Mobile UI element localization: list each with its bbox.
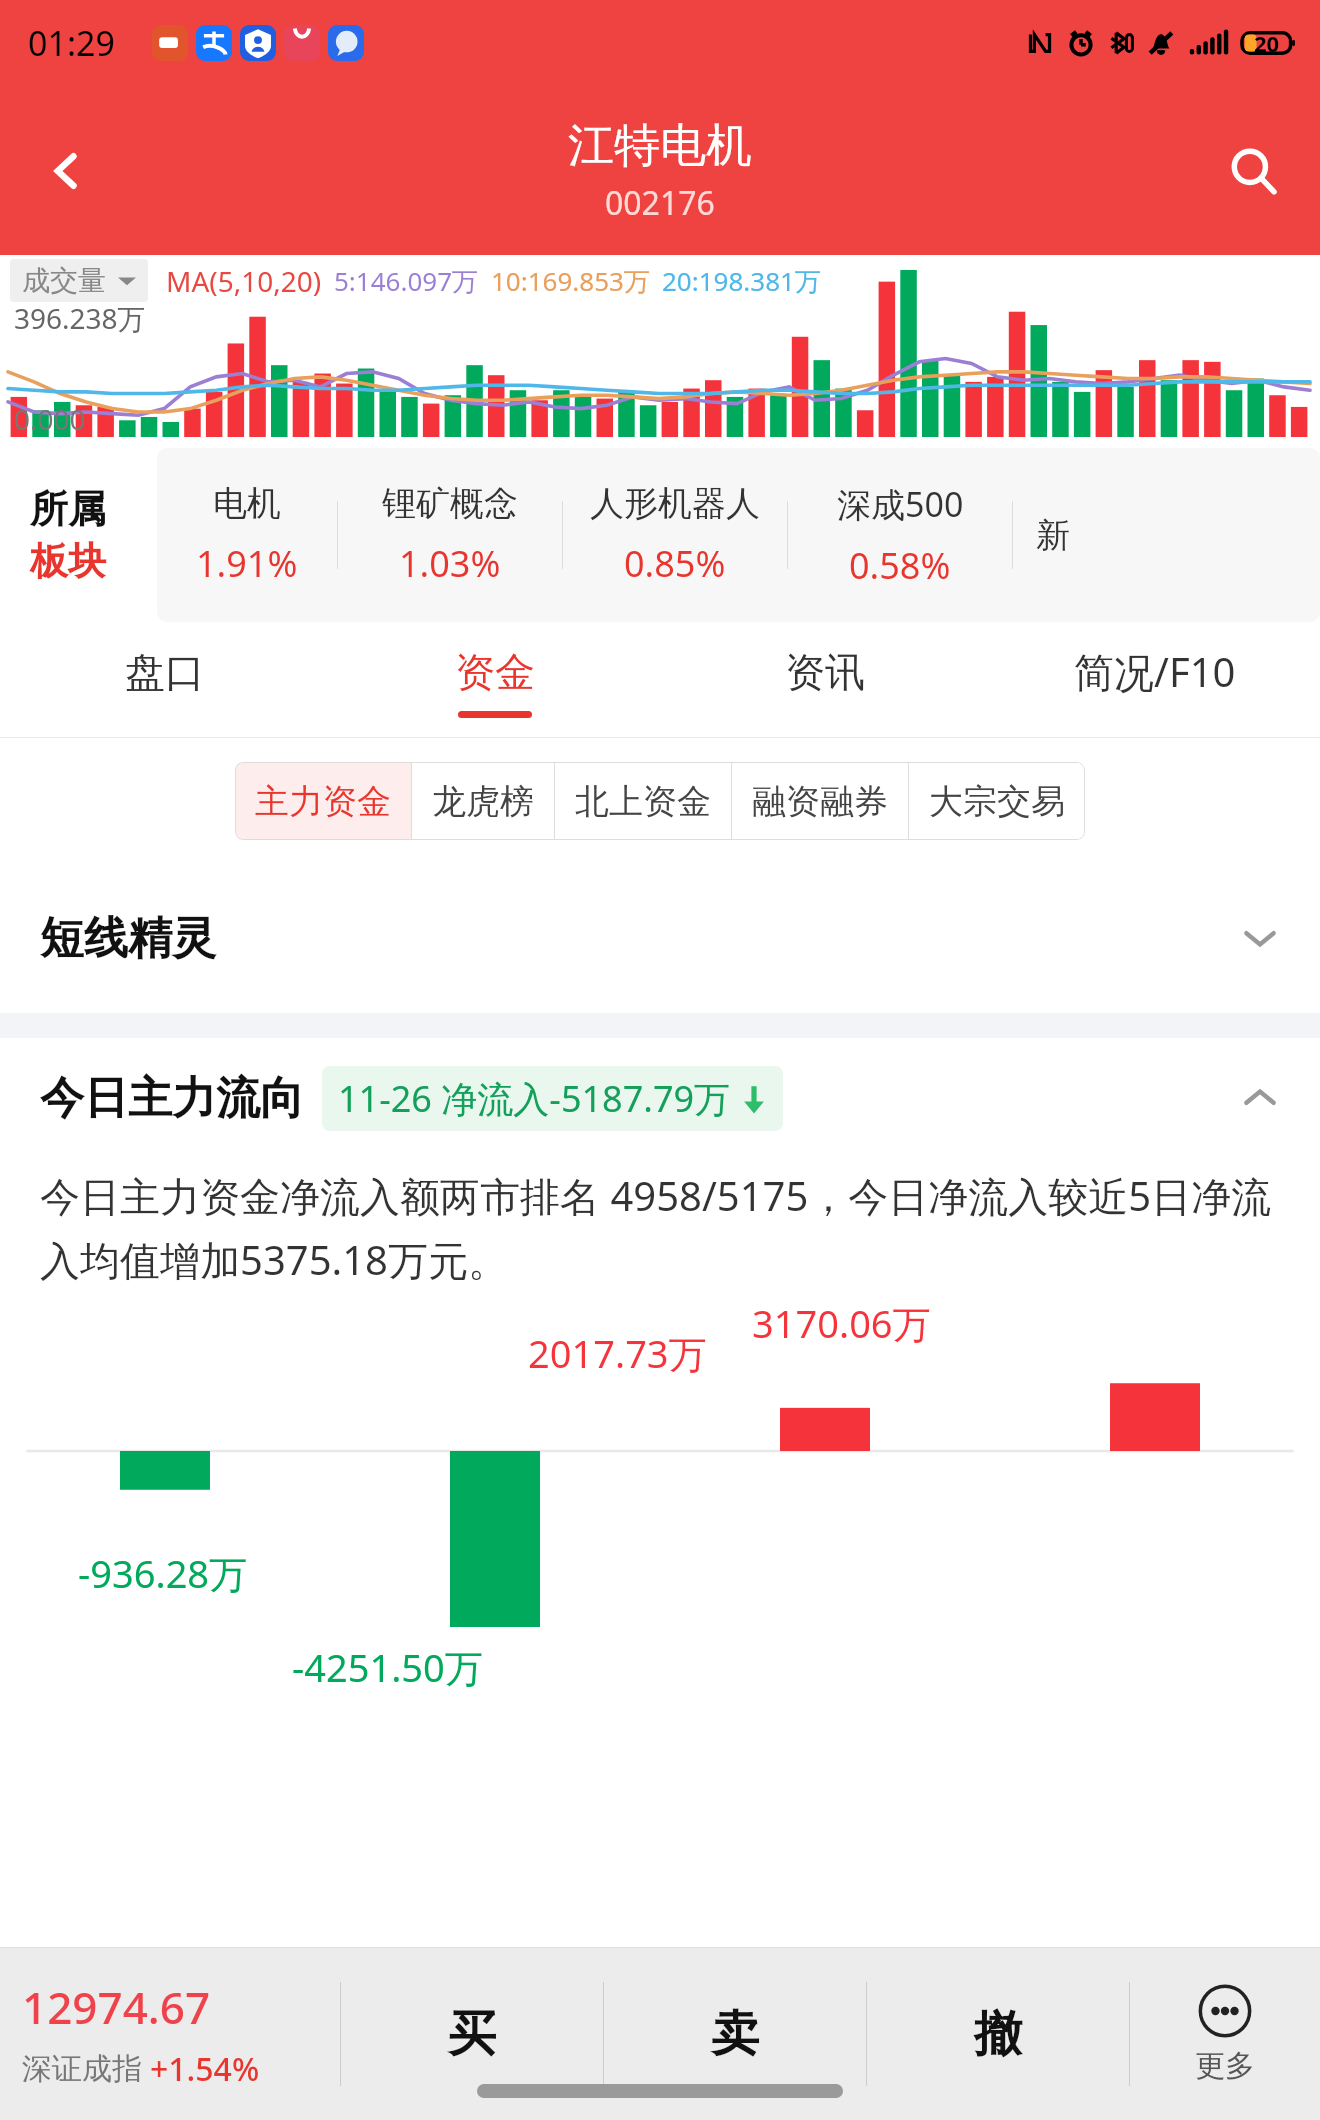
staticText: 12974.67	[22, 1977, 211, 2037]
staticText: 买	[448, 2004, 496, 2064]
staticText: 3170.06万	[752, 1297, 931, 1349]
button[interactable]: 人形机器人	[563, 448, 787, 622]
button[interactable]: 买	[341, 1948, 603, 2120]
staticText: 10:169.853万	[491, 263, 650, 299]
button[interactable]: 盘口	[0, 627, 330, 737]
staticText: 锂矿概念	[382, 482, 518, 525]
button[interactable]: 龙虎榜	[412, 762, 554, 840]
staticText: 主力资金	[255, 780, 391, 823]
staticText: 盘口	[125, 647, 205, 697]
staticText: 资金	[455, 647, 535, 697]
staticText: 1.03%	[399, 539, 501, 588]
staticText: 01:29	[28, 20, 115, 66]
button[interactable]: 锂矿概念	[338, 448, 562, 622]
staticText: 0.85%	[624, 539, 726, 588]
staticText: 卖	[711, 2004, 759, 2064]
staticText: 撤	[974, 2004, 1022, 2064]
staticText: 396.238万	[14, 299, 146, 337]
staticText: 002176	[605, 181, 715, 225]
staticText: 短线精灵	[40, 911, 216, 966]
staticText: 龙虎榜	[432, 780, 534, 823]
staticText: 电机	[213, 482, 281, 525]
staticText: 11-26 净流入-5187.79万	[338, 1074, 731, 1123]
button[interactable]: 简况/F10	[990, 627, 1320, 737]
staticText: 新	[1036, 514, 1070, 557]
other: Expand	[1240, 918, 1280, 958]
button[interactable]: 今日主力流向	[0, 1038, 1320, 1158]
staticText: +1.54%	[150, 2047, 260, 2091]
staticText: 简况/F10	[1074, 644, 1236, 699]
staticText: 板块	[30, 537, 106, 585]
button[interactable]: Search	[1208, 126, 1298, 216]
staticText: MA(5,10,20)	[166, 262, 322, 300]
button[interactable]: Back	[22, 126, 112, 216]
staticText: 20:198.381万	[662, 263, 821, 299]
button[interactable]: 12974.67	[0, 1948, 340, 2120]
staticText: 0.58%	[849, 541, 951, 590]
staticText: 20	[1254, 28, 1280, 58]
staticText: 江特电机	[568, 117, 752, 175]
button[interactable]: 资讯	[660, 627, 990, 737]
staticText: 今日主力资金净流入额两市排名 4958/5175，今日净流入较近5日净流入均值增…	[40, 1168, 1280, 1287]
button[interactable]: 大宗交易	[909, 762, 1085, 840]
staticText: 2017.73万	[528, 1327, 707, 1379]
button[interactable]: 资金	[330, 627, 660, 737]
staticText: -936.28万	[78, 1547, 248, 1599]
button[interactable]: 深成500	[788, 448, 1012, 622]
staticText: 0.000	[14, 400, 86, 438]
staticText: 今日主力流向	[40, 1071, 304, 1126]
staticText: 更多	[1195, 2047, 1255, 2085]
staticText: -4251.50万	[292, 1641, 483, 1693]
staticText: 所属	[30, 485, 106, 533]
staticText: 融资融券	[752, 780, 888, 823]
button[interactable]: 更多	[1130, 1948, 1320, 2120]
staticText: 1.91%	[196, 539, 298, 588]
staticText: 5:146.097万	[334, 263, 479, 299]
button[interactable]: 北上资金	[555, 762, 731, 840]
button[interactable]: 主力资金	[235, 762, 411, 840]
staticText: 大宗交易	[929, 780, 1065, 823]
staticText: 人形机器人	[590, 482, 760, 525]
button[interactable]: 新	[1013, 448, 1093, 622]
button[interactable]: 短线精灵	[0, 863, 1320, 1013]
other: Collapse	[1240, 1078, 1280, 1118]
staticText: 深证成指	[22, 2050, 142, 2088]
staticText: 深成500	[837, 481, 964, 527]
button[interactable]: 电机	[157, 448, 337, 622]
staticText: 资讯	[785, 647, 865, 697]
staticText: 成交量	[22, 263, 106, 298]
button[interactable]: 卖	[604, 1948, 866, 2120]
button[interactable]: 撤	[867, 1948, 1129, 2120]
button[interactable]: 融资融券	[732, 762, 908, 840]
button[interactable]: 成交量	[10, 259, 148, 302]
staticText: 北上资金	[575, 780, 711, 823]
